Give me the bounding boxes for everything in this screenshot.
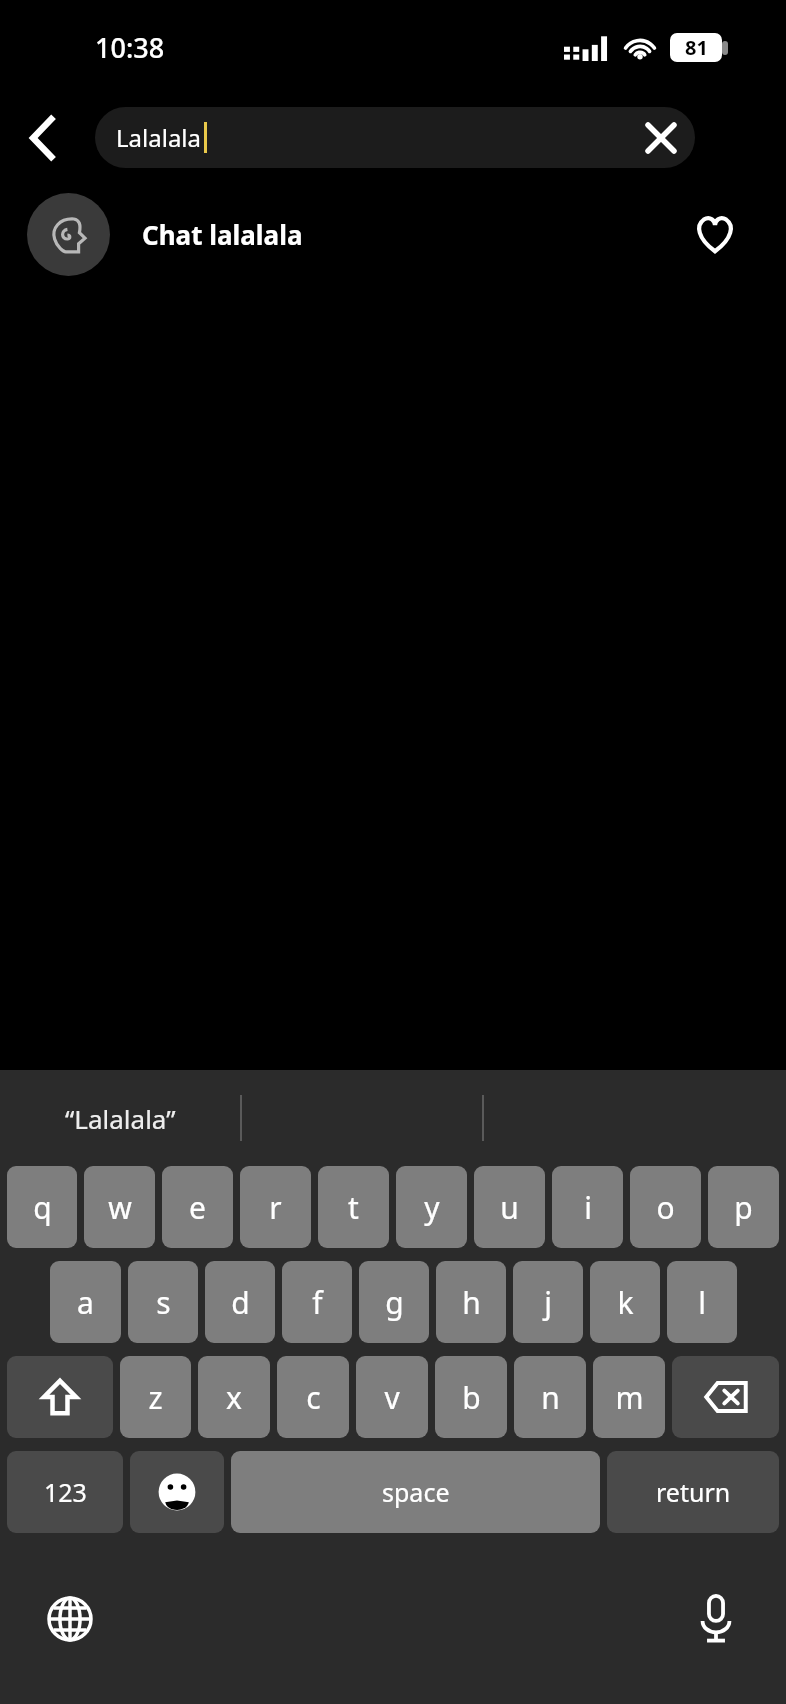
staticText: l (698, 1282, 706, 1323)
staticText: j (544, 1282, 552, 1323)
button[interactable]: Lalalala (95, 107, 695, 168)
staticText: return (656, 1475, 731, 1509)
staticText: space (382, 1475, 450, 1509)
button[interactable]: s (128, 1261, 198, 1343)
staticText: 10:38 (95, 29, 165, 66)
button[interactable]: r (240, 1166, 311, 1248)
button[interactable]: g (359, 1261, 429, 1343)
staticText: r (269, 1187, 282, 1228)
staticText: m (615, 1377, 644, 1418)
button[interactable]: l (667, 1261, 737, 1343)
staticText: d (231, 1282, 250, 1323)
staticText: g (385, 1282, 404, 1323)
button[interactable]: z (120, 1356, 191, 1438)
button[interactable]: v (356, 1356, 428, 1438)
button[interactable]: i (552, 1166, 623, 1248)
button[interactable]: space (231, 1451, 600, 1533)
staticText: 81 (685, 34, 708, 61)
button[interactable]: m (593, 1356, 665, 1438)
staticText: f (312, 1282, 323, 1323)
staticText: v (384, 1377, 400, 1418)
button[interactable]: k (590, 1261, 660, 1343)
staticText: z (148, 1377, 163, 1418)
staticText: w (108, 1187, 132, 1228)
staticText: p (734, 1187, 753, 1228)
button[interactable]: return (607, 1451, 779, 1533)
staticText: t (348, 1187, 359, 1228)
button[interactable]: Change language (30, 1579, 110, 1659)
staticText: x (226, 1377, 242, 1418)
staticText: o (656, 1187, 675, 1228)
button[interactable]: w (84, 1166, 155, 1248)
button[interactable]: Emoji (130, 1451, 224, 1533)
button[interactable]: d (205, 1261, 275, 1343)
staticText: e (189, 1187, 206, 1228)
button[interactable]: n (514, 1356, 586, 1438)
staticText: Lalalala (116, 121, 202, 154)
button[interactable]: Voice input (676, 1579, 756, 1659)
button[interactable]: j (513, 1261, 583, 1343)
staticText: “Lalalala” (65, 1101, 176, 1136)
button[interactable]: Back (12, 107, 74, 169)
button[interactable]: h (436, 1261, 506, 1343)
staticText: h (462, 1282, 481, 1323)
button[interactable]: u (474, 1166, 545, 1248)
button[interactable]: e (162, 1166, 233, 1248)
button[interactable]: x (198, 1356, 270, 1438)
button[interactable]: a (50, 1261, 121, 1343)
staticText: i (584, 1187, 592, 1228)
button[interactable]: Shift (7, 1356, 113, 1438)
staticText: 123 (44, 1475, 87, 1509)
button[interactable]: Chat lalalala (0, 180, 786, 288)
button[interactable]: Favorite (676, 195, 754, 273)
button[interactable]: b (435, 1356, 507, 1438)
button[interactable]: p (708, 1166, 779, 1248)
staticText: Chat lalalala (142, 217, 303, 252)
staticText: a (77, 1282, 94, 1323)
button[interactable]: Backspace (672, 1356, 779, 1438)
staticText: c (306, 1377, 321, 1418)
button[interactable]: Clear (635, 112, 687, 164)
staticText: n (541, 1377, 560, 1418)
button[interactable]: f (282, 1261, 352, 1343)
staticText: s (156, 1282, 171, 1323)
staticText: k (617, 1282, 634, 1323)
staticText: b (462, 1377, 481, 1418)
button[interactable]: y (396, 1166, 467, 1248)
staticText: y (424, 1187, 440, 1228)
staticText: q (33, 1187, 52, 1228)
button[interactable]: 123 (7, 1451, 123, 1533)
button[interactable]: q (7, 1166, 77, 1248)
button[interactable]: t (318, 1166, 389, 1248)
button[interactable]: c (277, 1356, 349, 1438)
button[interactable]: o (630, 1166, 701, 1248)
staticText: u (500, 1187, 519, 1228)
